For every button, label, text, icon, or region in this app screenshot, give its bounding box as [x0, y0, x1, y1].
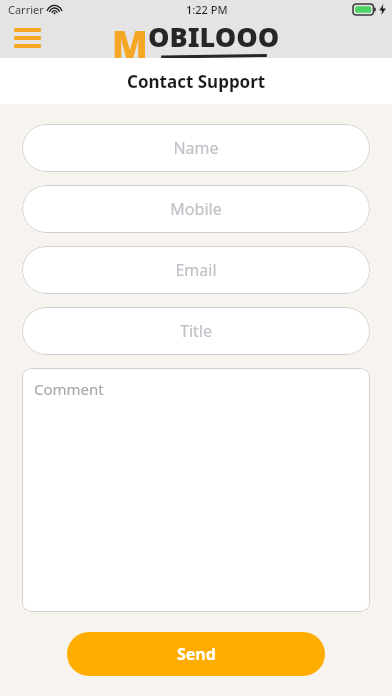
staticText: Mobile — [170, 198, 222, 220]
staticText: Contact Support — [127, 70, 266, 93]
button[interactable]: Email — [22, 246, 370, 294]
button[interactable]: Name — [22, 124, 370, 172]
staticText: Email — [175, 259, 217, 281]
staticText: M — [112, 18, 148, 58]
button[interactable]: Mobile — [22, 185, 370, 233]
button[interactable]: Send — [67, 632, 325, 676]
button[interactable]: Menu — [10, 21, 44, 55]
staticText: Title — [180, 320, 212, 342]
staticText: Name — [173, 137, 219, 159]
staticText: OBILOOO — [148, 18, 280, 55]
staticText: 1:22 PM — [186, 2, 228, 17]
staticText: Comment — [34, 379, 104, 399]
staticText: Carrier — [8, 2, 44, 17]
button[interactable]: Title — [22, 307, 370, 355]
staticText: Send — [177, 643, 216, 665]
button[interactable]: Comment — [22, 368, 370, 612]
